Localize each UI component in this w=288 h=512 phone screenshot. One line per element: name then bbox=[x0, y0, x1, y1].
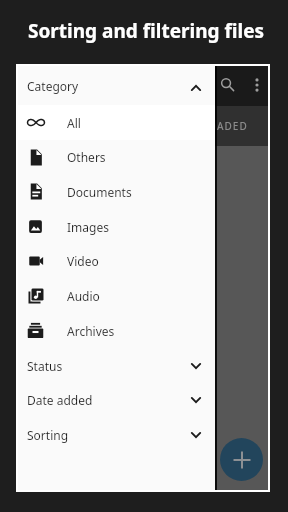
button[interactable]: Add bbox=[220, 438, 263, 481]
button[interactable]: Sorting bbox=[18, 417, 215, 452]
staticText: Sorting and filtering files bbox=[28, 18, 265, 44]
staticText: DOWNLOADED bbox=[166, 119, 248, 133]
button[interactable]: All bbox=[18, 105, 215, 140]
staticText: Status bbox=[27, 358, 63, 374]
staticText: Sorting bbox=[27, 427, 69, 443]
staticText: Video bbox=[67, 253, 99, 269]
button[interactable]: Date added bbox=[18, 382, 215, 417]
staticText: Archives bbox=[67, 323, 115, 339]
staticText: Others bbox=[67, 149, 106, 165]
button[interactable]: Video bbox=[18, 244, 215, 278]
button[interactable]: Documents bbox=[18, 174, 215, 209]
button[interactable]: Archives bbox=[18, 313, 215, 348]
staticText: All bbox=[67, 115, 81, 131]
staticText: Audio bbox=[67, 288, 100, 304]
button[interactable]: Audio bbox=[18, 278, 215, 313]
button[interactable]: Images bbox=[18, 209, 215, 244]
button[interactable]: More options bbox=[244, 72, 270, 98]
button[interactable]: Search bbox=[214, 71, 240, 97]
staticText: Date added bbox=[27, 392, 93, 408]
button[interactable]: Status bbox=[18, 348, 215, 383]
staticText: Category bbox=[27, 78, 79, 94]
button[interactable]: Others bbox=[18, 140, 215, 174]
staticText: Documents bbox=[67, 184, 132, 200]
button[interactable]: Category bbox=[18, 66, 215, 105]
staticText: Images bbox=[67, 219, 109, 235]
